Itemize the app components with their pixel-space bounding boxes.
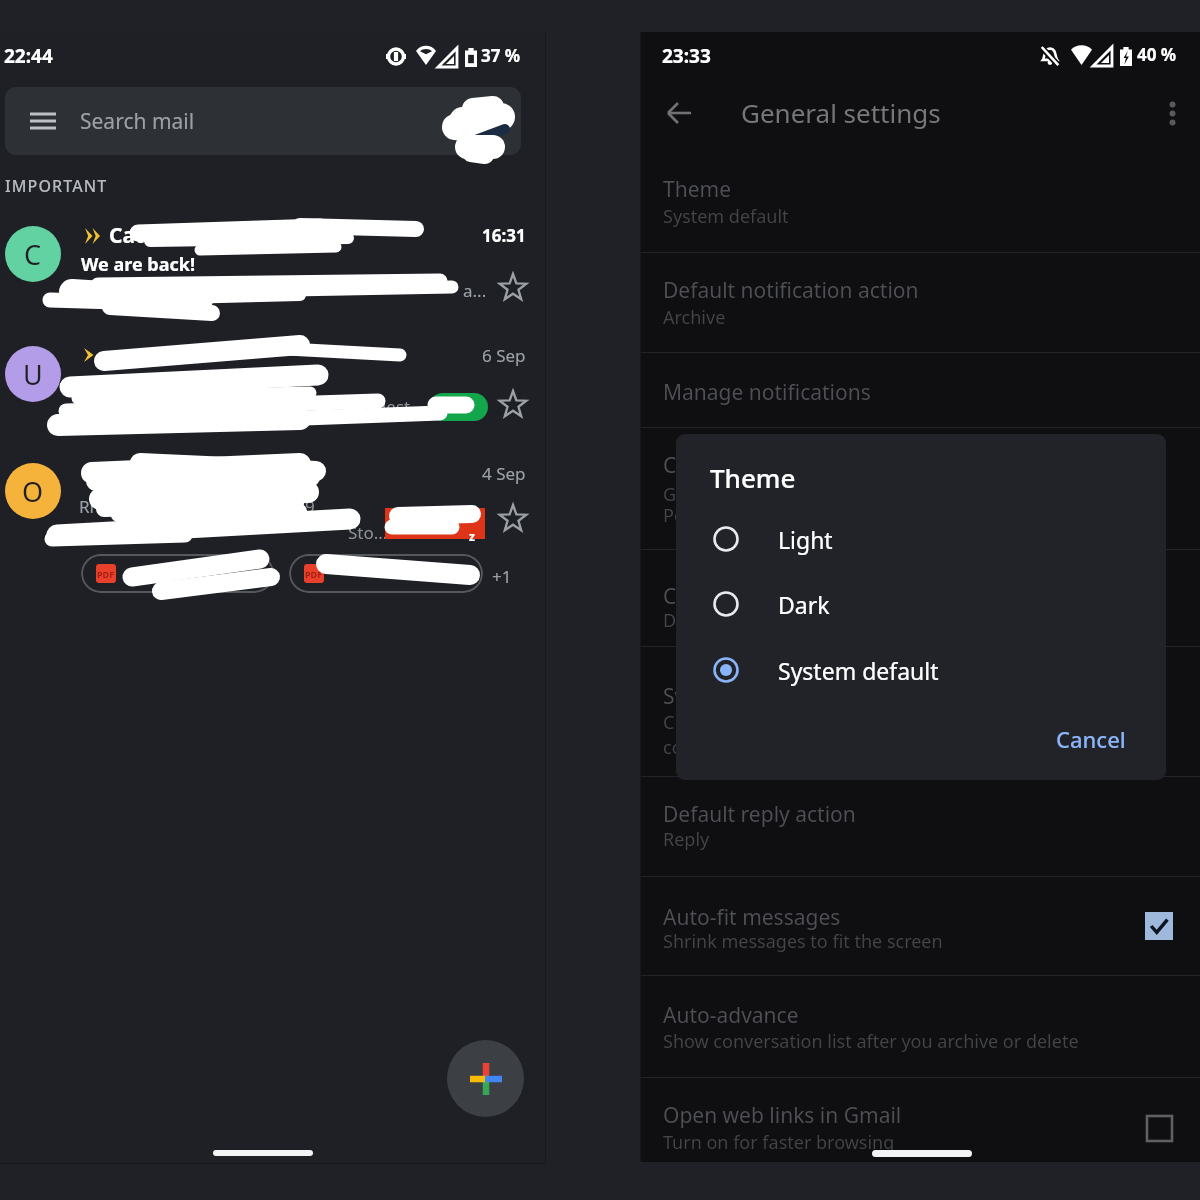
staticText: 6 Sep — [482, 344, 526, 367]
button[interactable]: System default — [690, 642, 1146, 698]
staticText: System default — [663, 204, 789, 229]
staticText: We are back! — [81, 252, 196, 277]
staticText: Conversation list density — [663, 582, 905, 611]
staticText: z — [469, 528, 475, 544]
button[interactable] — [641, 1079, 1200, 1141]
staticText: Default — [663, 608, 725, 633]
staticText: 9 — [305, 495, 315, 518]
staticText: Show conversation list after you archive… — [663, 1029, 1079, 1054]
staticText: C — [24, 236, 42, 273]
staticText: a... — [463, 279, 487, 302]
staticText: System default — [778, 655, 939, 686]
staticText: Swipe actions — [663, 682, 798, 711]
staticText: Po — [663, 503, 685, 528]
button[interactable] — [641, 660, 1200, 722]
staticText: 37 % — [481, 44, 521, 67]
staticText: Turn on for faster browsing — [663, 1130, 895, 1155]
staticText: Reply — [663, 827, 710, 852]
staticText: Cat — [109, 221, 145, 250]
staticText: conversation list — [663, 735, 802, 760]
button[interactable] — [641, 429, 1200, 491]
staticText: Change the actions when swiping in — [663, 710, 968, 735]
button[interactable]: More options — [1148, 89, 1196, 137]
staticText: Rr — [79, 495, 97, 518]
button[interactable] — [641, 153, 1200, 215]
staticText: 23:33 — [662, 43, 711, 69]
staticText: Cancel — [1056, 724, 1126, 754]
staticText: Auto-advance — [663, 1001, 799, 1030]
button[interactable] — [641, 979, 1200, 1041]
staticText: IMPORTANT — [5, 175, 108, 197]
button[interactable] — [641, 356, 1200, 418]
staticText: Theme — [710, 460, 796, 495]
button[interactable]: Back — [655, 89, 703, 137]
staticText: PDF — [97, 568, 115, 580]
staticText: Theme — [663, 175, 731, 204]
button[interactable] — [641, 560, 1200, 622]
button[interactable] — [0, 215, 546, 333]
staticText: Archive — [663, 305, 726, 330]
staticText: 40 % — [1137, 43, 1177, 66]
staticText: Search mail — [80, 107, 195, 136]
staticText: Shrink messages to fit the screen — [663, 929, 943, 954]
button[interactable]: Cancel — [1056, 724, 1126, 754]
button[interactable] — [641, 778, 1200, 840]
staticText: O — [22, 473, 44, 510]
staticText: Default reply action — [663, 800, 856, 829]
button[interactable]: Search mail — [5, 87, 521, 155]
staticText: Open web links in Gmail — [663, 1101, 902, 1130]
staticText: General settings — [741, 95, 941, 130]
button[interactable] — [641, 254, 1200, 316]
button[interactable]: Compose — [447, 1040, 524, 1117]
staticText: rgest... — [369, 395, 424, 418]
button[interactable]: Dark — [690, 576, 1146, 632]
staticText: Dark — [778, 589, 830, 620]
staticText: Group emails into conversations — [663, 482, 937, 507]
button[interactable]: PDF — [289, 554, 483, 593]
button[interactable]: Light — [690, 511, 1146, 567]
staticText: Auto-fit messages — [663, 903, 841, 932]
staticText: 22:44 — [4, 43, 53, 69]
button[interactable] — [0, 451, 546, 633]
staticText: Light — [778, 524, 833, 555]
staticText: Default notification action — [663, 276, 919, 305]
staticText: U — [23, 356, 43, 393]
staticText: 4 Sep — [482, 462, 526, 485]
button[interactable]: Checked — [1133, 900, 1185, 952]
staticText: Manage notifications — [663, 378, 871, 407]
button[interactable]: PDF — [81, 554, 274, 593]
button[interactable]: Unchecked — [1133, 1102, 1185, 1154]
button[interactable] — [641, 881, 1200, 943]
staticText: Sto... — [348, 521, 388, 544]
staticText: Conversation view — [663, 451, 844, 480]
staticText: 16:31 — [482, 224, 526, 247]
staticText: +1 — [492, 565, 512, 588]
button[interactable] — [0, 333, 546, 451]
staticText: PDF — [305, 568, 323, 580]
